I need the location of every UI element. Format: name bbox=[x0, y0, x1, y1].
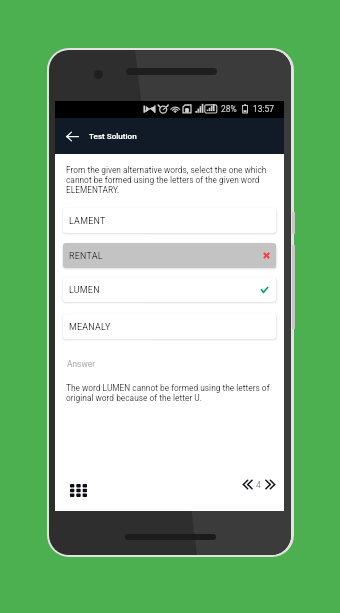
button[interactable]: MEANALY bbox=[63, 314, 276, 339]
staticText: LUMEN bbox=[69, 285, 100, 295]
button[interactable]: All questions bbox=[67, 480, 89, 500]
button[interactable]: LAMENT bbox=[63, 208, 276, 233]
staticText: The word LUMEN cannot be formed using th… bbox=[66, 383, 278, 403]
staticText: 4 bbox=[256, 480, 261, 490]
staticText: Answer bbox=[67, 359, 96, 369]
button[interactable]: Next page bbox=[265, 478, 277, 491]
staticText: 13:57 bbox=[253, 104, 274, 114]
button[interactable]: Previous page bbox=[241, 478, 253, 491]
staticText: LAMENT bbox=[69, 216, 106, 226]
staticText: Test Solution bbox=[89, 131, 137, 140]
button[interactable]: LUMEN bbox=[63, 277, 276, 302]
staticText: MEANALY bbox=[69, 322, 111, 332]
button[interactable]: Back bbox=[61, 125, 83, 147]
button[interactable]: RENTAL bbox=[63, 243, 276, 268]
staticText: 28% bbox=[221, 104, 237, 114]
staticText: RENTAL bbox=[69, 251, 103, 261]
staticText: From the given alternative words, select… bbox=[66, 165, 278, 195]
